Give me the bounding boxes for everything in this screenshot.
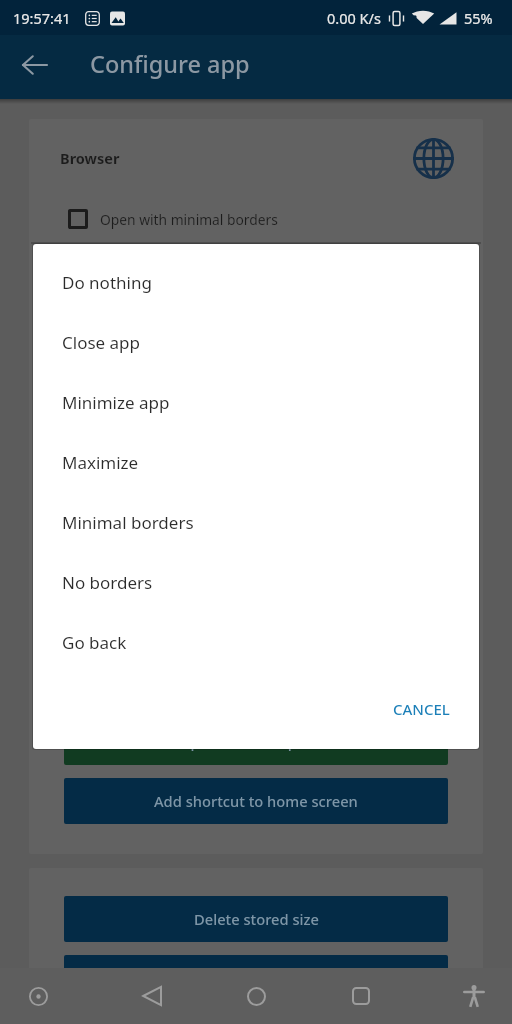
button[interactable]: Add shortcut to home screen bbox=[64, 778, 448, 824]
staticText: Open last used profile bbox=[179, 732, 334, 752]
staticText: Add shortcut to home screen bbox=[154, 791, 358, 811]
button[interactable]: Minimal borders bbox=[33, 492, 479, 552]
staticText: No borders bbox=[62, 571, 153, 594]
staticText: Go back bbox=[62, 631, 127, 654]
button[interactable]: Delete stored size bbox=[64, 896, 448, 942]
button[interactable]: Open browser bbox=[410, 135, 456, 181]
button[interactable]: Back bbox=[137, 968, 166, 1024]
staticText: Minimal borders bbox=[62, 511, 194, 534]
button[interactable]: Maximize bbox=[33, 432, 479, 492]
staticText: Open with minimal borders bbox=[100, 210, 278, 229]
button[interactable]: Close app bbox=[33, 312, 479, 372]
button[interactable]: No borders bbox=[33, 552, 479, 612]
staticText: 55% bbox=[464, 8, 493, 28]
button[interactable]: Recent apps bbox=[346, 968, 375, 1024]
staticText: Maximize bbox=[62, 451, 139, 474]
staticText: Minimize app bbox=[62, 391, 170, 414]
staticText: Browser bbox=[60, 148, 120, 168]
staticText: 19:57:41 bbox=[13, 8, 71, 28]
button[interactable]: Delete stored position bbox=[64, 955, 448, 1001]
button[interactable]: Open last used profile bbox=[64, 719, 448, 765]
staticText: Close app bbox=[62, 331, 141, 354]
button[interactable]: Open with minimal borders bbox=[68, 200, 483, 238]
button[interactable]: Home bbox=[242, 968, 271, 1024]
staticText: Configure app bbox=[90, 48, 250, 80]
button[interactable]: Navigate up bbox=[11, 41, 59, 89]
staticText: CANCEL bbox=[393, 699, 450, 719]
staticText: 0.00 K/s bbox=[327, 8, 381, 28]
button[interactable]: Assistant bbox=[24, 968, 53, 1024]
staticText: Do nothing bbox=[62, 271, 152, 294]
button[interactable]: Do nothing bbox=[33, 252, 479, 312]
button[interactable]: Accessibility bbox=[459, 968, 488, 1024]
button[interactable]: CANCEL bbox=[364, 689, 479, 729]
staticText: Delete stored size bbox=[194, 909, 319, 929]
button[interactable]: Minimize app bbox=[33, 372, 479, 432]
button[interactable]: Go back bbox=[33, 612, 479, 672]
